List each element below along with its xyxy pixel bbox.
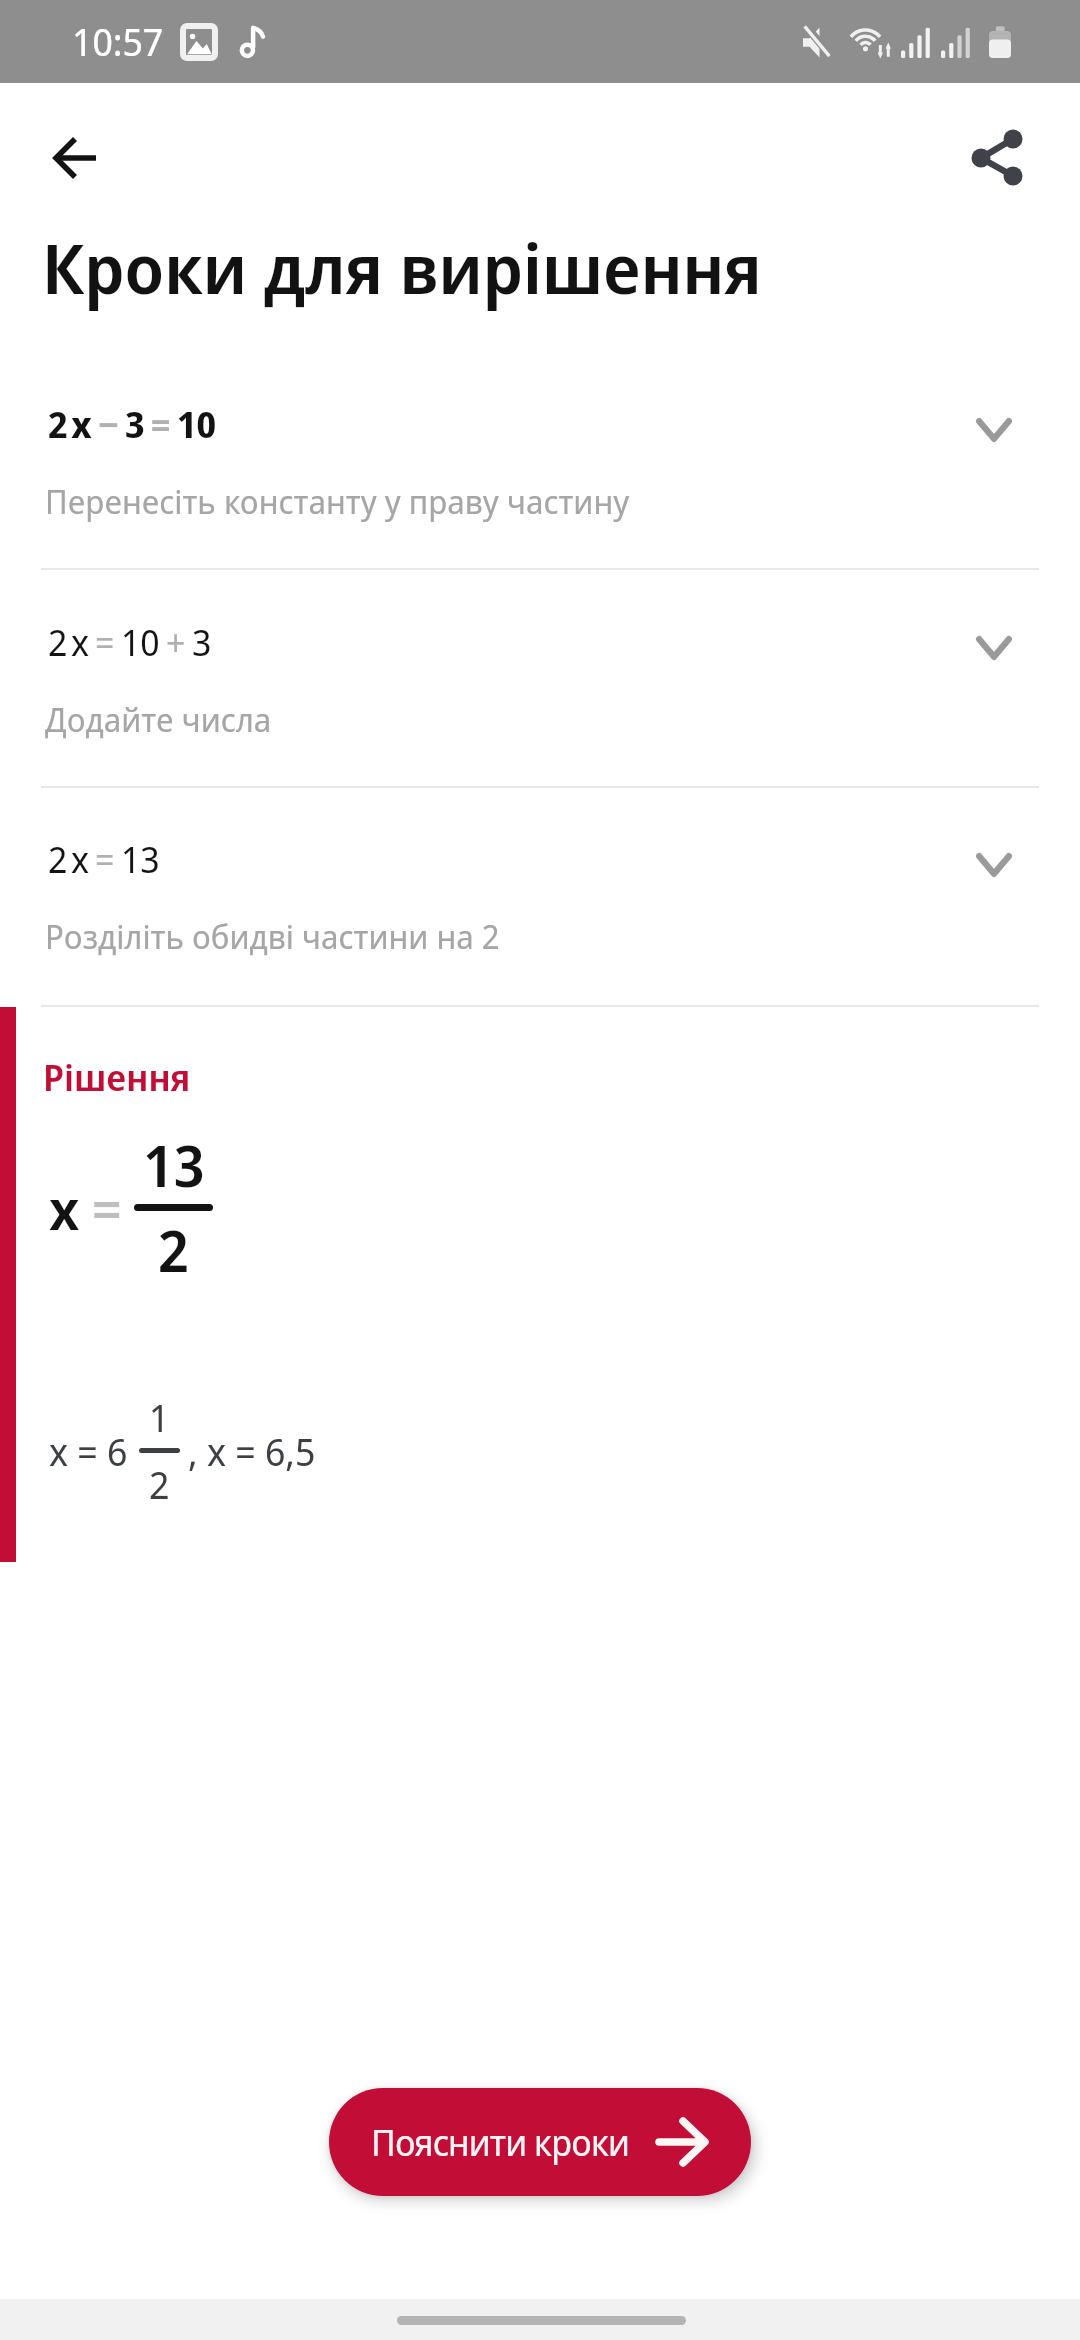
staticText: 3 xyxy=(125,400,145,449)
staticText: = xyxy=(95,835,115,884)
button[interactable]: Share xyxy=(955,115,1039,199)
staticText: 2 x xyxy=(48,618,89,667)
button[interactable]: 2 x xyxy=(0,590,1080,786)
staticText: 2 x xyxy=(48,835,89,884)
button[interactable]: Back xyxy=(30,116,114,200)
button[interactable]: 2 x xyxy=(0,372,1080,568)
staticText: = xyxy=(151,400,171,449)
staticText: 13 xyxy=(121,835,160,884)
staticText: 2 x xyxy=(48,400,92,449)
staticText: 13 xyxy=(143,1126,205,1204)
staticText: Перенесіть константу у праву частину xyxy=(45,479,630,524)
staticText: + xyxy=(166,618,186,667)
staticText: 1 xyxy=(149,1391,170,1443)
staticText: Рішення xyxy=(43,1053,191,1102)
staticText: 10:57 xyxy=(72,15,164,67)
staticText: Додайте числа xyxy=(45,697,272,742)
staticText: x xyxy=(49,1170,80,1246)
button[interactable]: Пояснити кроки xyxy=(329,2088,751,2196)
staticText: x = 6 xyxy=(49,1425,128,1477)
staticText: = xyxy=(92,1170,122,1245)
staticText: − xyxy=(98,400,119,449)
staticText: , x = 6,5 xyxy=(188,1425,316,1477)
staticText: 10 xyxy=(177,400,217,449)
staticText: 3 xyxy=(192,618,212,667)
staticText: Розділіть обидві частини на 2 xyxy=(45,914,500,959)
staticText: Кроки для вирішення xyxy=(42,221,762,314)
staticText: Пояснити кроки xyxy=(371,2118,630,2167)
staticText: = xyxy=(95,618,115,667)
button[interactable]: 2 x xyxy=(0,807,1080,1003)
staticText: 10 xyxy=(121,618,160,667)
staticText: 2 xyxy=(158,1211,189,1289)
staticText: 2 xyxy=(149,1458,170,1510)
